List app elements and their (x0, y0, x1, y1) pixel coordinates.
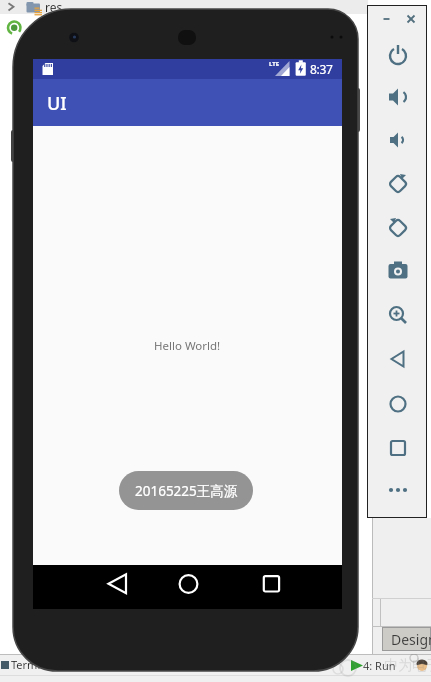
staticText: Termin (11, 657, 48, 672)
button[interactable] (384, 476, 412, 504)
staticText: 20165225王高源 (135, 482, 238, 500)
button[interactable] (250, 569, 292, 599)
button[interactable] (384, 170, 412, 198)
staticText: Hello World! (154, 338, 221, 354)
button[interactable] (382, 627, 431, 651)
button[interactable] (384, 42, 412, 70)
button[interactable] (384, 257, 412, 285)
staticText: LTE (269, 60, 280, 68)
button[interactable] (384, 345, 412, 373)
button[interactable] (167, 569, 209, 599)
staticText: res (45, 0, 63, 15)
button[interactable] (384, 214, 412, 242)
button[interactable] (384, 390, 412, 418)
button[interactable]: 20165225王高源 (119, 471, 253, 510)
staticText: 8:37 (310, 61, 333, 77)
staticText: UI (47, 91, 67, 116)
staticText: 4: Run (363, 658, 396, 673)
button[interactable] (96, 569, 138, 599)
button[interactable] (384, 126, 412, 154)
staticText: 中为电子 (384, 657, 431, 675)
button[interactable] (384, 83, 412, 111)
staticText: Design (391, 630, 431, 649)
button[interactable] (384, 434, 412, 462)
button[interactable] (384, 301, 412, 329)
